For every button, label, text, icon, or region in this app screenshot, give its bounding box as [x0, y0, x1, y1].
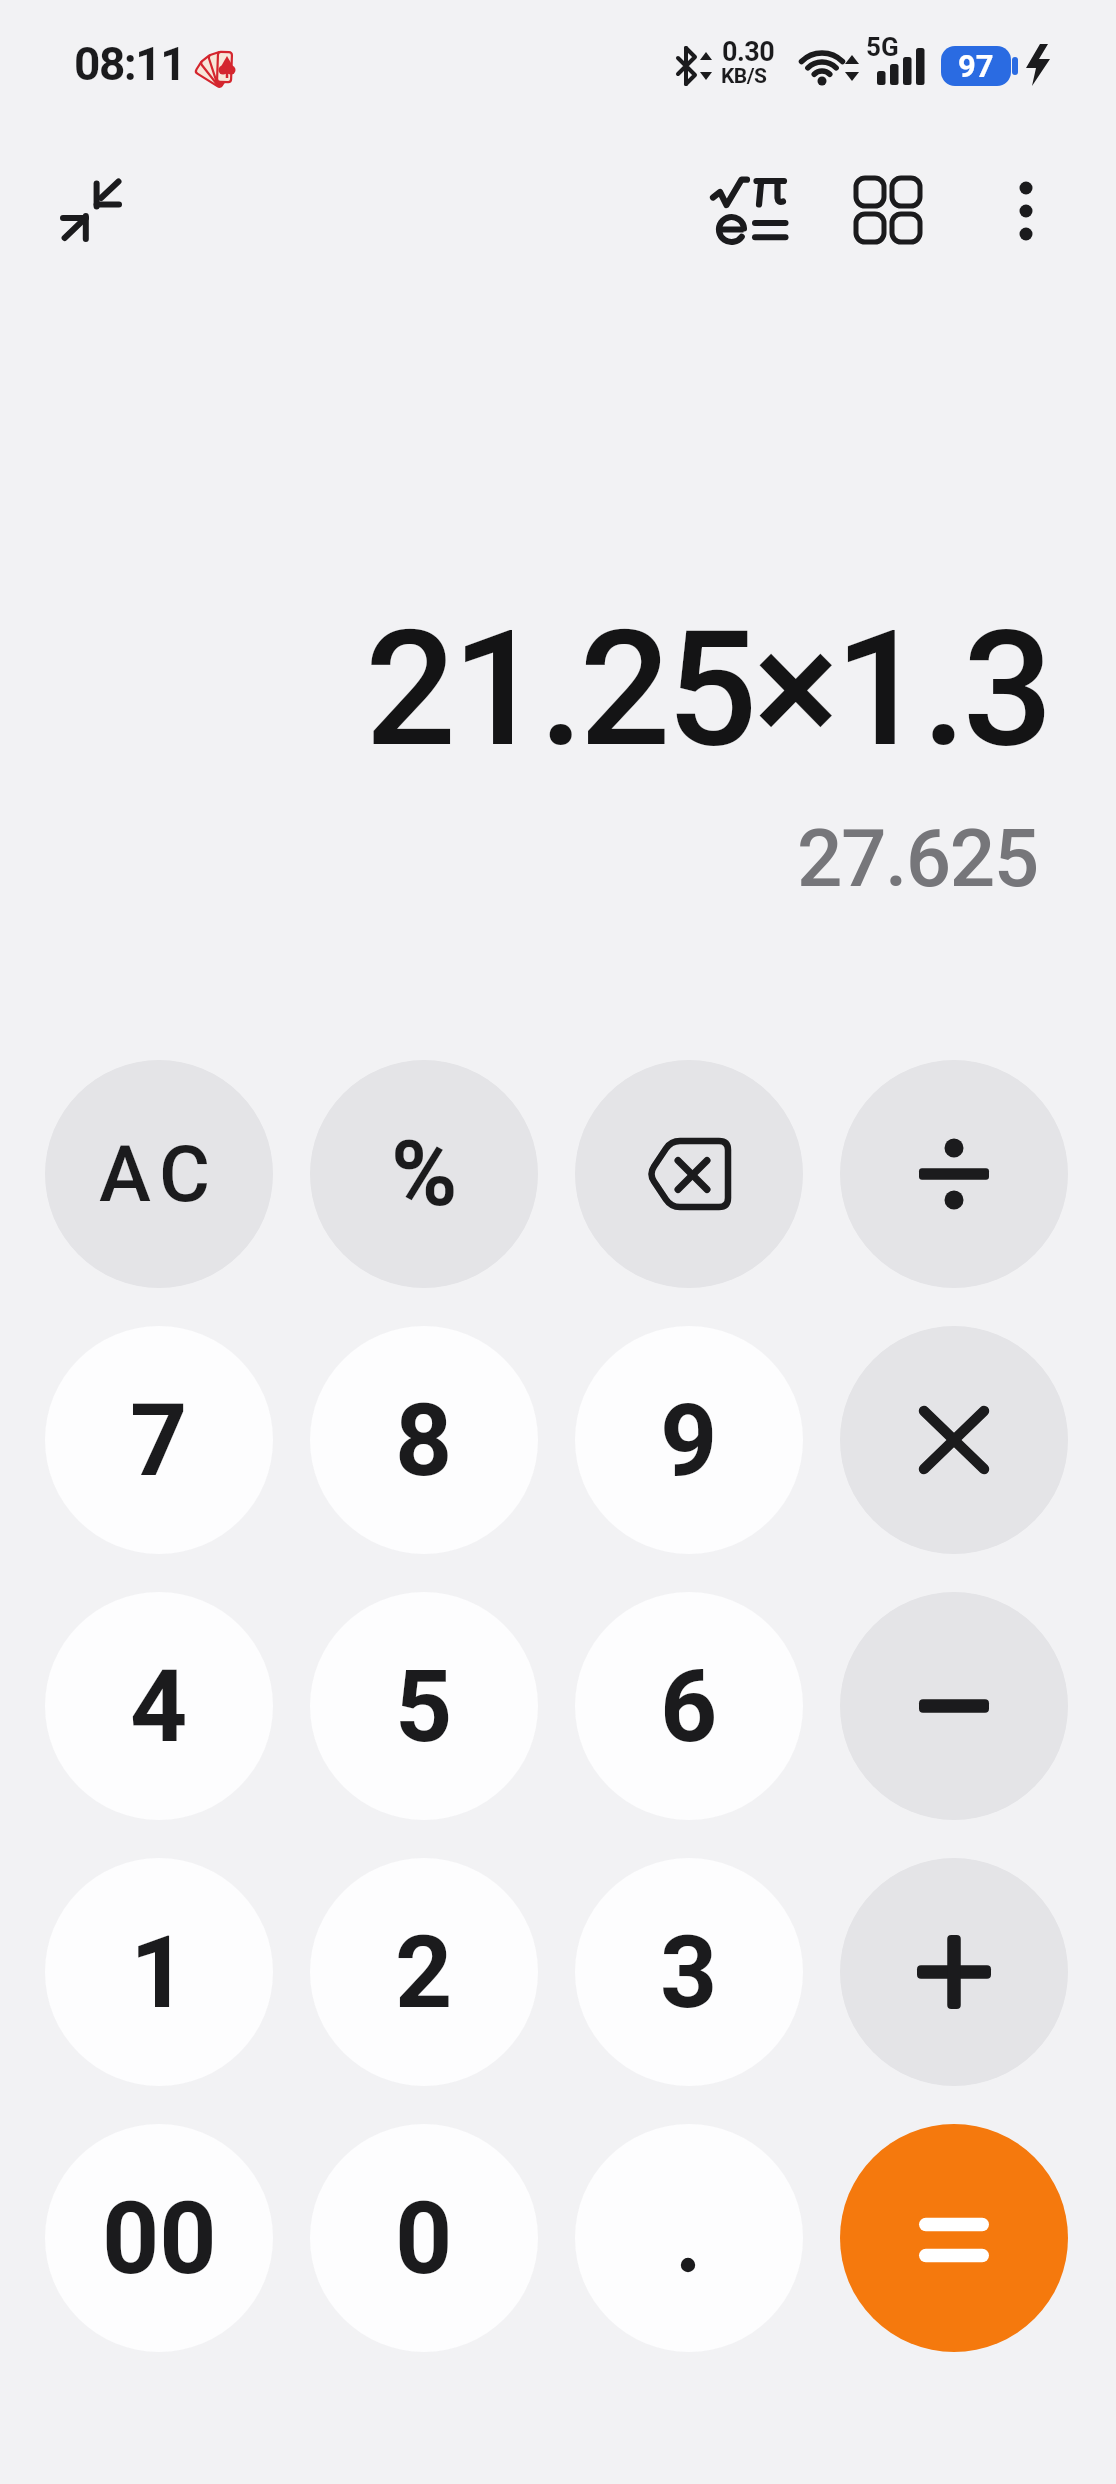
- button[interactable]: 6: [575, 1592, 803, 1820]
- button[interactable]: 5: [310, 1592, 538, 1820]
- button[interactable]: [575, 2124, 803, 2352]
- button[interactable]: [575, 1060, 803, 1288]
- button[interactable]: 0: [310, 2124, 538, 2352]
- staticText: 5: [395, 1648, 453, 1765]
- button[interactable]: 4: [45, 1592, 273, 1820]
- button[interactable]: [840, 1592, 1068, 1820]
- staticText: 27.625: [797, 812, 1038, 906]
- staticText: 5G: [866, 32, 899, 62]
- button[interactable]: 2: [310, 1858, 538, 2086]
- staticText: 3: [660, 1914, 718, 2031]
- staticText: 0: [395, 2180, 453, 2297]
- button[interactable]: [846, 164, 934, 252]
- button[interactable]: 7: [45, 1326, 273, 1554]
- staticText: 8: [395, 1382, 453, 1499]
- staticText: 9: [660, 1382, 718, 1499]
- button[interactable]: 3: [575, 1858, 803, 2086]
- staticText: AC: [99, 1129, 220, 1220]
- button[interactable]: AC: [45, 1060, 273, 1288]
- button[interactable]: [840, 1858, 1068, 2086]
- staticText: 00: [102, 2180, 217, 2297]
- button[interactable]: [700, 164, 792, 256]
- staticText: 1: [130, 1914, 188, 2031]
- staticText: 2: [395, 1914, 453, 2031]
- button[interactable]: 8: [310, 1326, 538, 1554]
- button[interactable]: %: [310, 1060, 538, 1288]
- staticText: 08:11: [74, 37, 186, 91]
- button[interactable]: 1: [45, 1858, 273, 2086]
- button[interactable]: [840, 2124, 1068, 2352]
- staticText: 21.25×1.3: [365, 596, 1050, 784]
- button[interactable]: [840, 1326, 1068, 1554]
- staticText: 4: [130, 1648, 188, 1765]
- button[interactable]: [992, 164, 1060, 256]
- staticText: 0.30: [722, 36, 775, 68]
- button[interactable]: [45, 165, 137, 257]
- staticText: %: [391, 1122, 458, 1227]
- staticText: KB/S: [721, 64, 767, 89]
- staticText: 97: [958, 48, 994, 84]
- button[interactable]: 9: [575, 1326, 803, 1554]
- button[interactable]: [840, 1060, 1068, 1288]
- button[interactable]: 00: [45, 2124, 273, 2352]
- staticText: 6: [660, 1648, 718, 1765]
- staticText: 7: [130, 1382, 188, 1499]
